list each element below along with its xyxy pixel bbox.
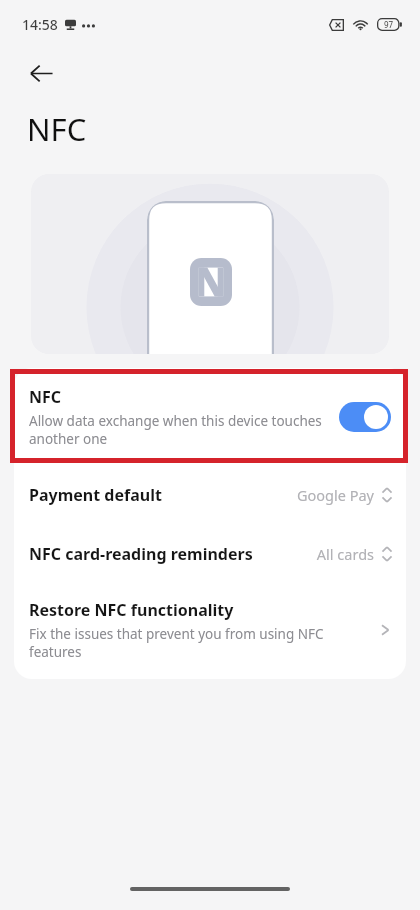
- staticText: Restore NFC functionality: [29, 599, 234, 621]
- staticText: Google Pay: [296, 485, 374, 505]
- button[interactable]: Back: [16, 48, 66, 98]
- button[interactable]: Restore NFC functionality: [14, 583, 406, 665]
- staticText: Fix the issues that prevent you from usi…: [29, 625, 370, 661]
- staticText: 97: [384, 19, 394, 30]
- staticText: Payment default: [29, 484, 296, 506]
- button[interactable]: NFC on: [339, 402, 391, 432]
- button[interactable]: Payment default: [14, 465, 406, 524]
- staticText: All cards: [316, 544, 374, 564]
- button[interactable]: NFC: [14, 368, 406, 465]
- staticText: NFC card-reading reminders: [29, 543, 316, 565]
- button[interactable]: NFC card-reading reminders: [14, 524, 406, 583]
- staticText: 14:58: [22, 15, 58, 34]
- staticText: Allow data exchange when this device tou…: [29, 412, 325, 448]
- staticText: NFC: [27, 108, 87, 150]
- staticText: NFC: [29, 386, 62, 408]
